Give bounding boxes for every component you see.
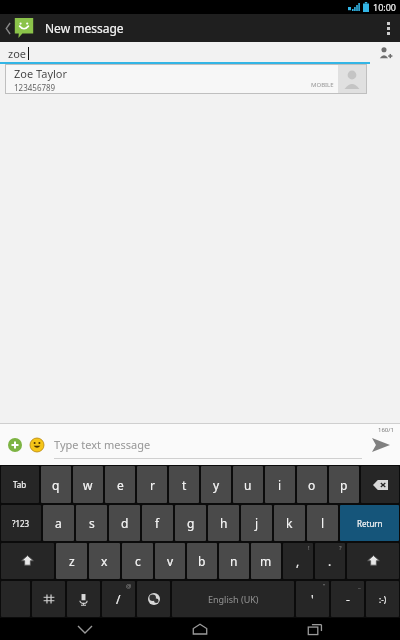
button[interactable]: :-) — [366, 581, 399, 617]
button[interactable]: f — [142, 505, 173, 541]
staticText: MOBILE — [311, 81, 334, 89]
staticText: m — [260, 553, 272, 569]
staticText: Tab — [13, 479, 27, 490]
button[interactable]: More options — [376, 14, 400, 42]
staticText: ? — [339, 544, 342, 552]
button[interactable]: x — [89, 543, 120, 579]
button[interactable]: g — [175, 505, 206, 541]
staticText: g — [187, 515, 195, 531]
button[interactable]: h — [208, 505, 239, 541]
staticText: q — [52, 477, 60, 493]
button[interactable]: Attach — [4, 434, 26, 456]
staticText: r — [150, 477, 155, 493]
staticText: zoe — [8, 46, 27, 61]
staticText: y — [213, 477, 220, 493]
button[interactable]: Change language — [137, 581, 170, 617]
staticText: New message — [45, 20, 124, 36]
button[interactable]: z — [56, 543, 87, 579]
staticText: w — [83, 477, 93, 493]
staticText: / — [116, 591, 121, 607]
staticText: , — [296, 553, 300, 569]
staticText: ?123 — [12, 518, 30, 529]
staticText: t — [182, 477, 187, 493]
staticText: Zoe Taylor — [14, 66, 68, 81]
staticText: h — [220, 515, 228, 531]
button[interactable]: Tab — [1, 466, 39, 503]
staticText: b — [198, 553, 206, 569]
staticText: _ — [358, 582, 361, 590]
staticText: 10:00 — [373, 1, 397, 13]
button[interactable]: Home — [170, 618, 230, 640]
button[interactable]: Type text message — [54, 424, 362, 465]
staticText: s — [89, 515, 95, 531]
button[interactable]: o — [297, 466, 327, 503]
staticText: p — [340, 477, 348, 493]
staticText: j — [255, 515, 259, 531]
button[interactable]: n — [219, 543, 249, 579]
button[interactable]: Add recipient — [370, 42, 400, 64]
button[interactable]: " — [296, 581, 329, 617]
button[interactable]: Send — [366, 430, 396, 460]
staticText: e — [117, 477, 124, 493]
staticText: English (UK) — [208, 593, 259, 605]
button[interactable]: Shift — [347, 543, 399, 579]
staticText: z — [69, 553, 75, 569]
button[interactable]: q — [41, 466, 71, 503]
button[interactable]: v — [155, 543, 185, 579]
staticText: - — [346, 591, 350, 607]
button[interactable]: d — [109, 505, 140, 541]
button[interactable]: j — [241, 505, 272, 541]
button[interactable]: Back — [55, 618, 115, 640]
button[interactable]: c — [122, 543, 153, 579]
button[interactable]: Voice input — [67, 581, 100, 617]
button[interactable]: @ — [102, 581, 135, 617]
button[interactable]: English (UK) — [172, 581, 294, 617]
button[interactable]: Shift — [1, 543, 54, 579]
staticText: @ — [126, 582, 132, 590]
staticText: d — [121, 515, 129, 531]
button[interactable]: k — [274, 505, 305, 541]
staticText: ' — [311, 591, 314, 607]
staticText: a — [55, 515, 62, 531]
button[interactable]: _ — [331, 581, 364, 617]
staticText: Return — [357, 518, 383, 529]
staticText: . — [328, 553, 332, 569]
button[interactable]: a — [43, 505, 74, 541]
staticText: ! — [308, 544, 310, 552]
staticText: f — [155, 515, 160, 531]
staticText: o — [308, 477, 316, 493]
button[interactable]: Delete — [361, 466, 399, 503]
staticText: x — [101, 553, 108, 569]
button[interactable]: s — [76, 505, 107, 541]
button[interactable]: ? — [315, 543, 345, 579]
button[interactable]: u — [233, 466, 263, 503]
staticText: k — [286, 515, 293, 531]
staticText: 160/1 — [378, 426, 394, 434]
staticText: i — [278, 477, 282, 493]
staticText: :-) — [379, 594, 387, 605]
staticText: n — [230, 553, 238, 569]
button[interactable]: Zoe Taylor — [6, 65, 366, 93]
button[interactable]: e — [105, 466, 135, 503]
button[interactable]: ?123 — [1, 505, 41, 541]
button[interactable]: Return — [340, 505, 399, 541]
button[interactable]: l — [307, 505, 338, 541]
button[interactable]: r — [137, 466, 167, 503]
button[interactable]: Recent apps — [285, 618, 345, 640]
button[interactable]: m — [251, 543, 281, 579]
staticText: c — [135, 553, 141, 569]
button[interactable]: Navigate up — [2, 14, 37, 42]
staticText: Type text message — [54, 437, 151, 452]
button[interactable]: p — [329, 466, 359, 503]
staticText: u — [244, 477, 252, 493]
staticText: v — [167, 553, 174, 569]
button[interactable]: i — [265, 466, 295, 503]
button[interactable]: y — [201, 466, 231, 503]
button[interactable]: w — [73, 466, 103, 503]
button[interactable]: t — [169, 466, 199, 503]
button[interactable]: Keyboard settings — [32, 581, 65, 617]
button[interactable]: ! — [283, 543, 313, 579]
button[interactable]: Insert emoji — [26, 434, 48, 456]
button[interactable]: b — [187, 543, 217, 579]
